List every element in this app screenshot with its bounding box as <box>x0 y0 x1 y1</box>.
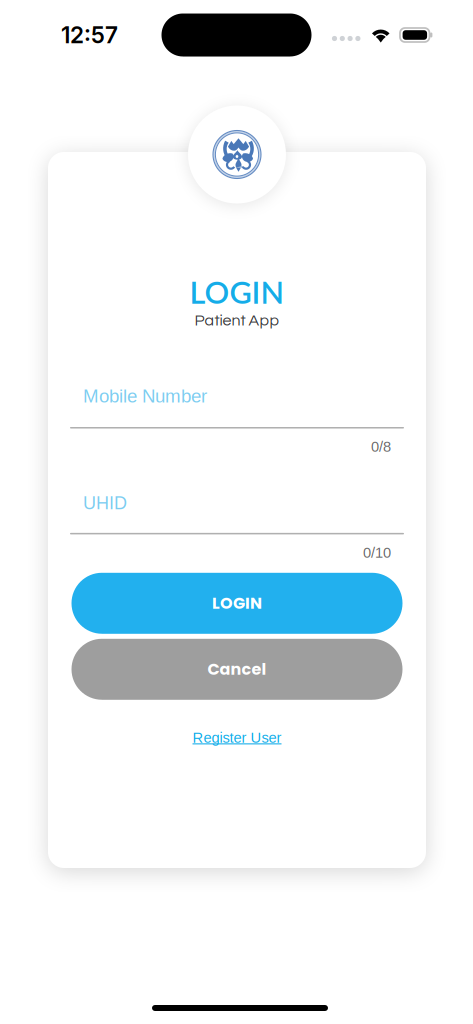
button[interactable]: Register User <box>192 729 281 747</box>
staticText: 12:57 <box>61 21 118 49</box>
staticText: Patient App <box>194 312 279 329</box>
staticText: LOGIN <box>212 592 262 614</box>
staticText: 0/8 <box>371 438 391 455</box>
staticText: UHID <box>83 493 127 513</box>
button[interactable]: Cancel <box>71 639 402 700</box>
staticText: Cancel <box>207 658 266 680</box>
button[interactable]: UHID <box>70 493 404 561</box>
button[interactable]: LOGIN <box>71 573 402 634</box>
staticText: Mobile Number <box>83 386 207 406</box>
staticText: 0/10 <box>363 544 391 561</box>
button[interactable]: Mobile Number <box>70 386 404 455</box>
staticText: Register User <box>192 730 281 746</box>
staticText: LOGIN <box>189 274 284 310</box>
